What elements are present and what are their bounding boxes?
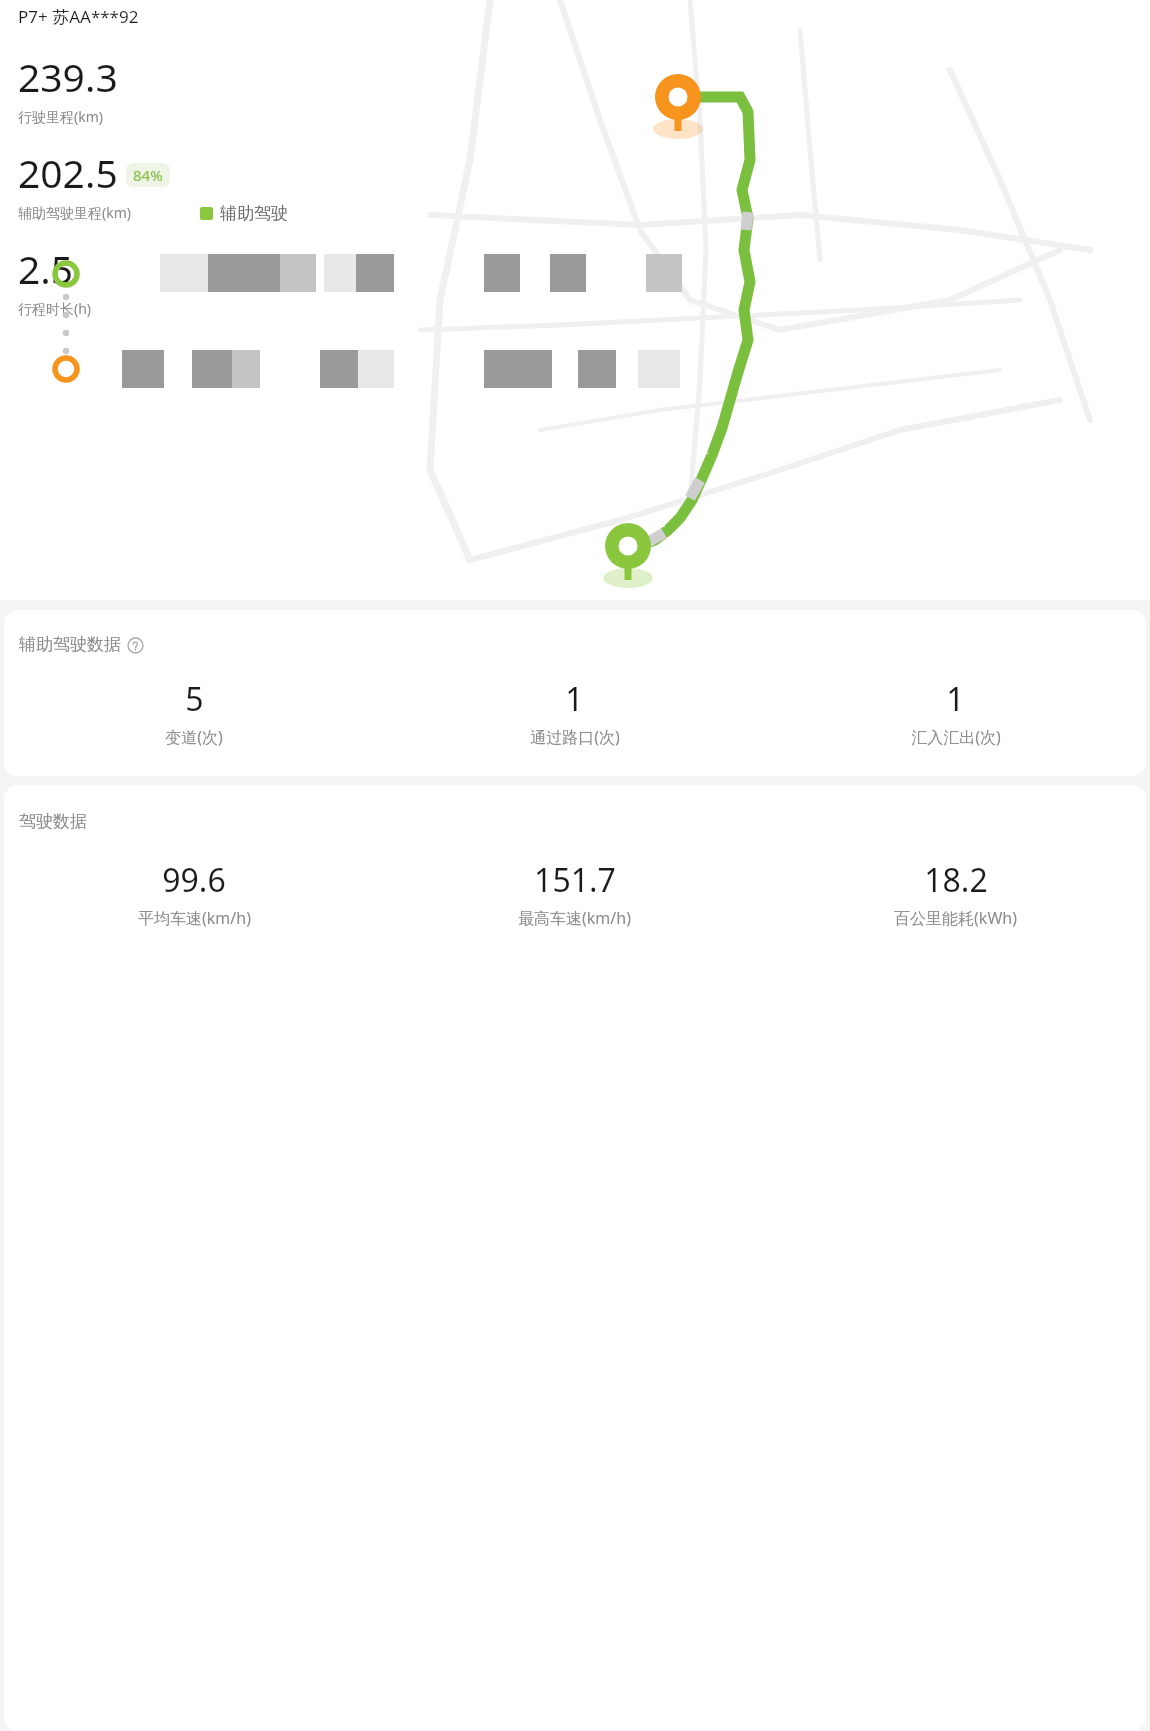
staticText: 1 [565, 677, 584, 721]
staticText: 202.5 [18, 146, 118, 199]
button[interactable]: 辅助驾驶数据 [4, 610, 1146, 776]
staticText: 151.7 [534, 858, 616, 902]
staticText: 变道(次) [165, 726, 223, 748]
staticText: 最高车速(km/h) [518, 907, 631, 929]
staticText: P7+ 苏AA***92 [18, 5, 139, 28]
staticText: 239.3 [18, 50, 118, 103]
button[interactable]: 1 [765, 677, 1146, 748]
staticText: 84% [133, 165, 163, 185]
staticText: 1 [946, 677, 965, 721]
staticText: 辅助驾驶里程(km) [18, 203, 131, 222]
staticText: 行程时长(h) [18, 299, 92, 318]
staticText: 99.6 [162, 858, 226, 902]
staticText: 辅助驾驶 [220, 203, 288, 224]
button[interactable]: 驾驶数据 [4, 785, 1146, 1731]
staticText: 百公里能耗(kWh) [894, 907, 1017, 929]
staticText: 行驶里程(km) [18, 107, 103, 126]
button[interactable]: 5 [4, 677, 384, 748]
staticText: 18.2 [924, 858, 988, 902]
button[interactable]: 99.6 [4, 858, 384, 929]
staticText: 辅助驾驶数据 [19, 634, 121, 655]
staticText: 5 [185, 677, 204, 721]
button[interactable]: 18.2 [765, 858, 1146, 929]
staticText: 2.5 [18, 242, 74, 295]
staticText: 汇入汇出(次) [911, 726, 1001, 748]
staticText: 通过路口(次) [530, 726, 620, 748]
button[interactable]: 151.7 [384, 858, 765, 929]
button[interactable]: 1 [384, 677, 765, 748]
button[interactable]: 帮助说明 [126, 636, 144, 654]
staticText: 驾驶数据 [19, 811, 87, 832]
staticText: 平均车速(km/h) [138, 907, 251, 929]
